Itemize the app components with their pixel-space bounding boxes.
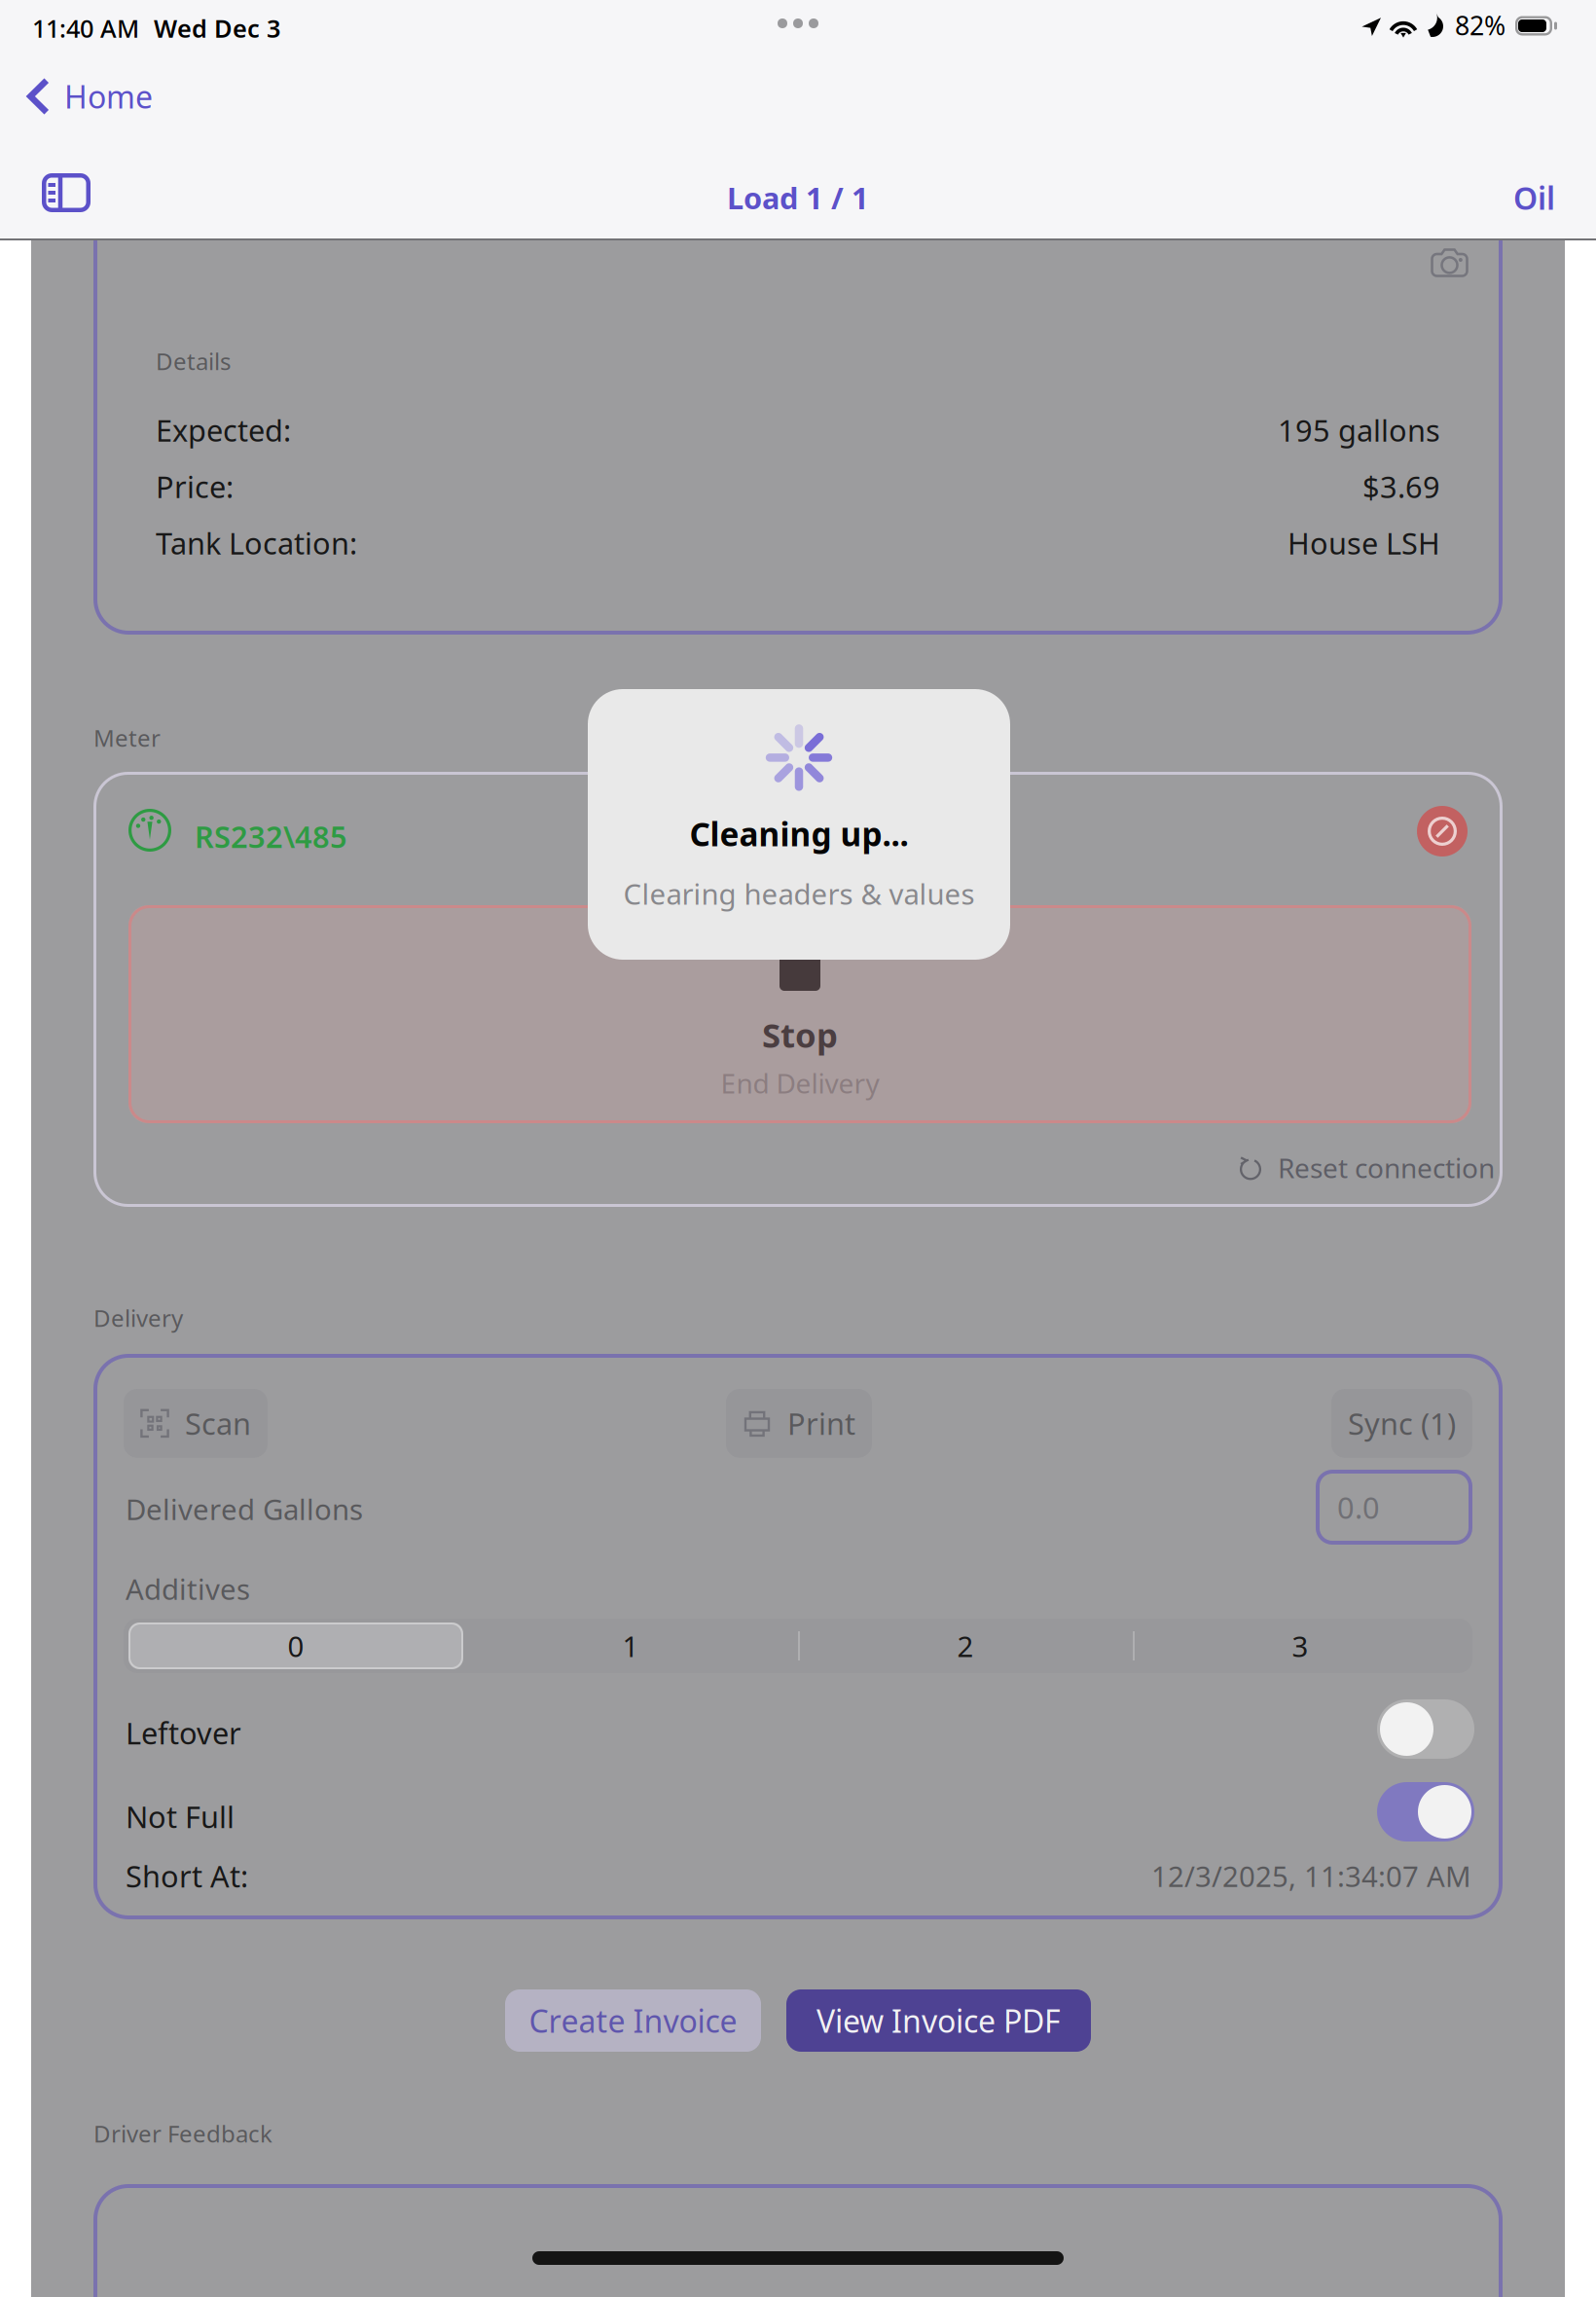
staticText: Stop [762,1012,838,1057]
staticText: Details [156,346,231,377]
staticText: Scan [185,1404,251,1443]
button[interactable]: Stop [128,905,1471,1123]
button[interactable]: 3 [1133,1619,1468,1673]
staticText: Print [787,1404,855,1443]
button[interactable]: Take photo [1415,233,1484,293]
staticText: 1 [622,1627,639,1665]
staticText: House LSH [1288,523,1440,563]
staticText: Price: [156,467,234,506]
button[interactable]: Print [726,1389,872,1458]
staticText: $3.69 [1362,467,1440,506]
staticText: 2 [957,1627,974,1665]
staticText: 11:40 AM [32,12,139,44]
staticText: End Delivery [721,1065,879,1101]
staticText: Not Full [126,1797,235,1836]
button[interactable]: 1 [463,1619,798,1673]
button[interactable]: View Invoice PDF [786,1989,1091,2052]
staticText: 195 gallons [1278,410,1440,450]
button[interactable]: Create Invoice [505,1989,761,2052]
staticText: Driver Feedback [93,2118,272,2149]
button[interactable]: Disconnect meter [1417,806,1468,857]
staticText: 0 [288,1627,304,1665]
staticText: Tank Location: [156,523,357,563]
button[interactable]: Home [0,68,170,137]
staticText: Create Invoice [529,2000,737,2041]
staticText: Clearing headers & values [623,875,975,913]
staticText: Expected: [156,410,291,450]
staticText: Delivered Gallons [126,1490,363,1528]
button[interactable]: Sync (1) [1331,1389,1472,1458]
staticText: RS232\485 [195,817,347,856]
staticText: 0.0 [1337,1487,1380,1527]
staticText: Leftover [126,1713,241,1753]
button[interactable]: Toggle on [1377,1782,1474,1841]
staticText: 82% [1455,8,1505,43]
button[interactable]: 0 [128,1619,463,1673]
staticText: Load 1 / 1 [727,178,869,217]
staticText: View Invoice PDF [816,2000,1061,2041]
staticText: Oil [1513,177,1555,218]
button[interactable]: Oil [1494,159,1575,236]
button[interactable]: Toggle off [1377,1699,1474,1759]
staticText: Short At: [126,1856,248,1896]
staticText: 3 [1292,1627,1308,1665]
staticText: Home [64,76,153,117]
staticText: Delivery [93,1302,183,1333]
button[interactable]: Scan [124,1389,268,1458]
staticText: Cleaning up... [689,812,908,855]
staticText: Wed Dec 3 [154,12,280,44]
staticText: Meter [93,722,161,753]
staticText: Additives [126,1570,250,1608]
button[interactable]: Reset connection [1236,1146,1495,1190]
staticText: Sync (1) [1348,1404,1456,1443]
staticText: 12/3/2025, 11:34:07 AM [1151,1857,1471,1895]
button[interactable]: Toggle sidebar [21,161,113,235]
button[interactable]: 2 [798,1619,1133,1673]
staticText: Reset connection [1278,1149,1495,1186]
